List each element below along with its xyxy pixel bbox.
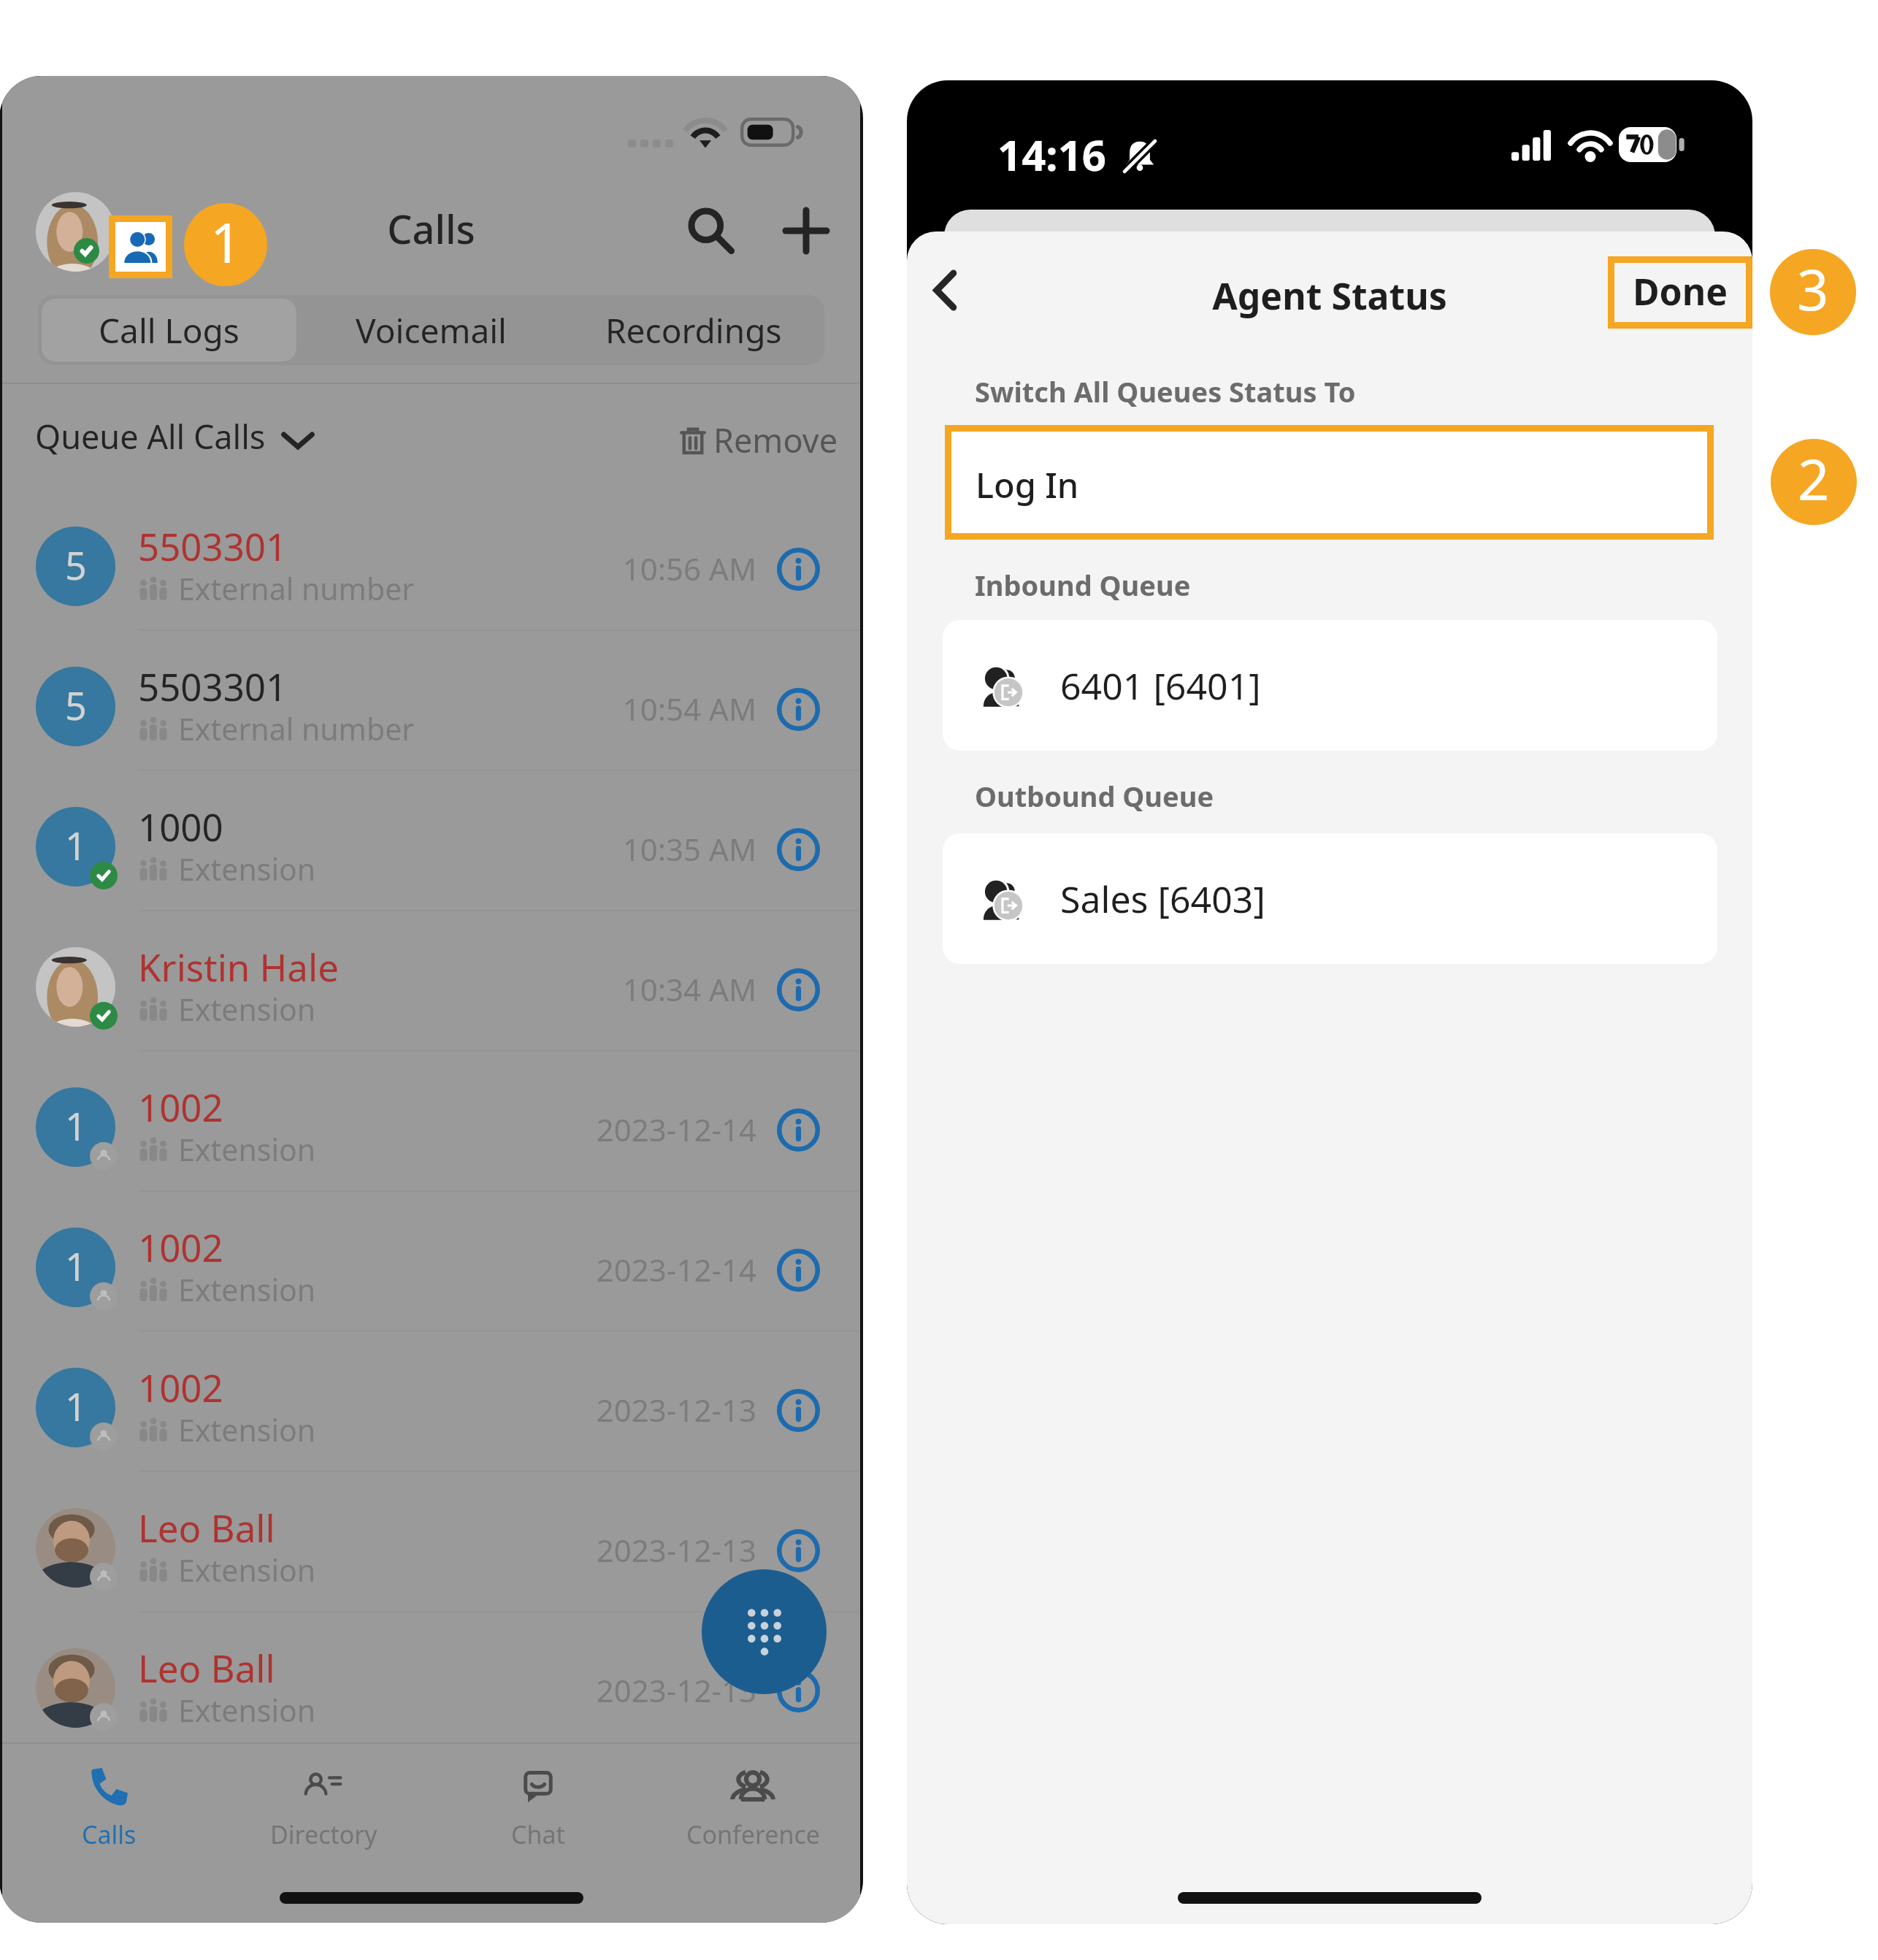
staticText: 2023-12-14 <box>2 1249 756 1290</box>
button[interactable]: 5 <box>2 631 860 771</box>
staticText: 10:54 AM <box>2 688 756 730</box>
button[interactable]: Call Logs <box>42 299 296 361</box>
staticText: Remove <box>713 418 838 462</box>
button[interactable]: Sales [6403] <box>943 833 1717 964</box>
staticText: 5503301 <box>138 521 288 571</box>
button[interactable]: Leo Ball <box>2 1612 860 1753</box>
button[interactable]: Back <box>910 248 980 318</box>
button[interactable]: New call <box>773 197 840 264</box>
staticText: 5503301 <box>138 661 288 711</box>
staticText: Calls <box>82 1818 137 1851</box>
staticText: 1 <box>65 1100 87 1152</box>
staticText: 1 <box>210 205 242 279</box>
button[interactable]: Call details <box>777 1249 820 1292</box>
button[interactable]: Call details <box>777 688 820 731</box>
button[interactable]: Search <box>678 197 745 264</box>
staticText: 1 <box>65 1380 87 1432</box>
staticText: Inbound Queue <box>975 566 1191 604</box>
button[interactable]: Kristin Hale <box>2 911 860 1052</box>
staticText: 1000 <box>138 801 223 851</box>
staticText: Leo Ball <box>138 1502 275 1553</box>
staticText: External number <box>178 708 415 749</box>
staticText: Leo Ball <box>138 1642 275 1693</box>
button[interactable]: 1 <box>2 1052 860 1192</box>
button[interactable]: Call details <box>777 828 820 871</box>
staticText: Kristin Hale <box>138 941 339 992</box>
staticText: Outbound Queue <box>975 777 1214 815</box>
button[interactable]: Call details <box>777 1389 820 1432</box>
staticText: Queue All Calls <box>35 414 266 459</box>
button[interactable]: 6401 [6401] <box>943 620 1717 751</box>
staticText: 1002 <box>138 1362 223 1412</box>
staticText: Agent Status <box>907 271 1752 321</box>
staticText: Switch All Queues Status To <box>975 372 1356 410</box>
button[interactable]: Calls <box>2 1742 216 1923</box>
button[interactable]: Voicemail <box>304 299 559 361</box>
staticText: 1002 <box>138 1082 223 1132</box>
staticText: 2023-12-13 <box>2 1389 756 1431</box>
button[interactable]: Call details <box>777 968 820 1011</box>
staticText: 3 <box>1797 251 1829 327</box>
button[interactable]: 1 <box>2 1332 860 1472</box>
staticText: Call Logs <box>99 307 239 353</box>
staticText: Done <box>1633 267 1728 316</box>
button[interactable]: Agent Status <box>115 222 166 272</box>
staticText: Voicemail <box>356 307 507 353</box>
button[interactable]: Log In <box>951 432 1707 533</box>
button[interactable]: Remove <box>678 408 802 453</box>
button[interactable]: 1 <box>2 771 860 911</box>
staticText: 10:56 AM <box>2 548 756 589</box>
staticText: Extension <box>178 1129 316 1170</box>
button[interactable]: Call details <box>777 1529 820 1572</box>
button[interactable]: Call details <box>777 1669 820 1712</box>
staticText: Recordings <box>605 307 782 353</box>
staticText: Log In <box>976 462 1079 508</box>
staticText: 5 <box>65 539 87 591</box>
staticText: 14:16 <box>997 126 1107 183</box>
button[interactable]: Call details <box>777 548 820 591</box>
button[interactable]: Dialpad <box>702 1569 827 1694</box>
button[interactable]: Done <box>1614 263 1746 322</box>
staticText: 2023-12-13 <box>2 1529 756 1571</box>
staticText: 1 <box>65 819 87 871</box>
staticText: 2 <box>1798 441 1830 517</box>
staticText: Calls <box>2 202 860 256</box>
button[interactable]: Directory <box>216 1742 431 1923</box>
staticText: 1002 <box>138 1222 223 1272</box>
staticText: 5 <box>65 679 87 731</box>
staticText: Extension <box>178 1690 316 1731</box>
staticText: Extension <box>178 1269 316 1310</box>
button[interactable]: 1 <box>2 1192 860 1332</box>
button[interactable]: 5 <box>2 491 860 631</box>
staticText: Extension <box>178 989 316 1030</box>
staticText: 1 <box>65 1240 87 1292</box>
staticText: 6401 [6401] <box>1060 661 1261 711</box>
staticText: Chat <box>511 1818 565 1851</box>
button[interactable]: Call details <box>777 1109 820 1152</box>
staticText: Conference <box>686 1818 820 1851</box>
staticText: Extension <box>178 849 316 889</box>
button[interactable]: Queue All Calls <box>35 414 314 459</box>
staticText: Directory <box>270 1818 377 1851</box>
staticText: 2023-12-14 <box>2 1109 756 1150</box>
staticText: 10:34 AM <box>2 968 756 1010</box>
button[interactable]: Leo Ball <box>2 1472 860 1612</box>
button[interactable]: Recordings <box>566 299 821 361</box>
staticText: Extension <box>178 1409 316 1450</box>
button[interactable]: Chat <box>431 1742 645 1923</box>
staticText: 10:35 AM <box>2 828 756 870</box>
button[interactable]: Conference <box>645 1742 860 1923</box>
staticText: Extension <box>178 1550 316 1590</box>
staticText: Sales [6403] <box>1060 874 1265 924</box>
staticText: External number <box>178 568 415 609</box>
staticText: 2023-12-13 <box>2 1669 756 1711</box>
